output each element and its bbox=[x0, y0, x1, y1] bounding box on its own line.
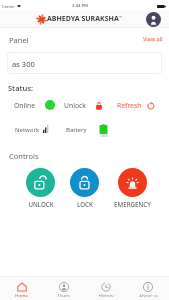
staticText: UNLOCK bbox=[28, 200, 54, 208]
staticText: Refresh bbox=[117, 101, 142, 110]
button[interactable]: UNLOCK bbox=[17, 168, 64, 208]
staticText: 2:44 PM bbox=[72, 3, 88, 9]
staticText: 100% bbox=[100, 134, 108, 138]
button[interactable]: Users bbox=[43, 277, 85, 300]
staticText: Panel bbox=[9, 35, 29, 45]
staticText: Carrier bbox=[2, 4, 16, 9]
staticText: Home bbox=[15, 293, 28, 297]
button[interactable]: Home bbox=[0, 277, 43, 300]
staticText: History bbox=[98, 293, 114, 297]
staticText: EMERGENCY bbox=[114, 200, 151, 208]
staticText: ™ bbox=[119, 15, 123, 20]
staticText: About us bbox=[139, 293, 158, 297]
button[interactable]: Profile bbox=[146, 12, 161, 27]
staticText: Online bbox=[14, 101, 36, 110]
staticText: Unlock bbox=[64, 101, 86, 110]
staticText: View all bbox=[143, 35, 163, 42]
staticText: Controls bbox=[9, 151, 39, 161]
button[interactable]: About us bbox=[127, 277, 169, 300]
button[interactable]: LOCK bbox=[61, 168, 108, 208]
button[interactable]: History bbox=[85, 277, 127, 300]
staticText: Status: bbox=[8, 83, 34, 93]
button[interactable]: EMERGENCY bbox=[109, 168, 156, 208]
staticText: ABHEDYA SURAKSHA bbox=[47, 14, 119, 24]
button[interactable]: View all bbox=[143, 35, 163, 42]
button[interactable]: Refresh bbox=[117, 101, 155, 110]
staticText: Battery bbox=[66, 126, 87, 134]
button[interactable]: as 300 bbox=[7, 52, 162, 74]
staticText: Users bbox=[58, 293, 70, 297]
staticText: as 300 bbox=[12, 59, 35, 69]
staticText: LOCK bbox=[77, 200, 93, 208]
staticText: Network bbox=[15, 126, 40, 134]
